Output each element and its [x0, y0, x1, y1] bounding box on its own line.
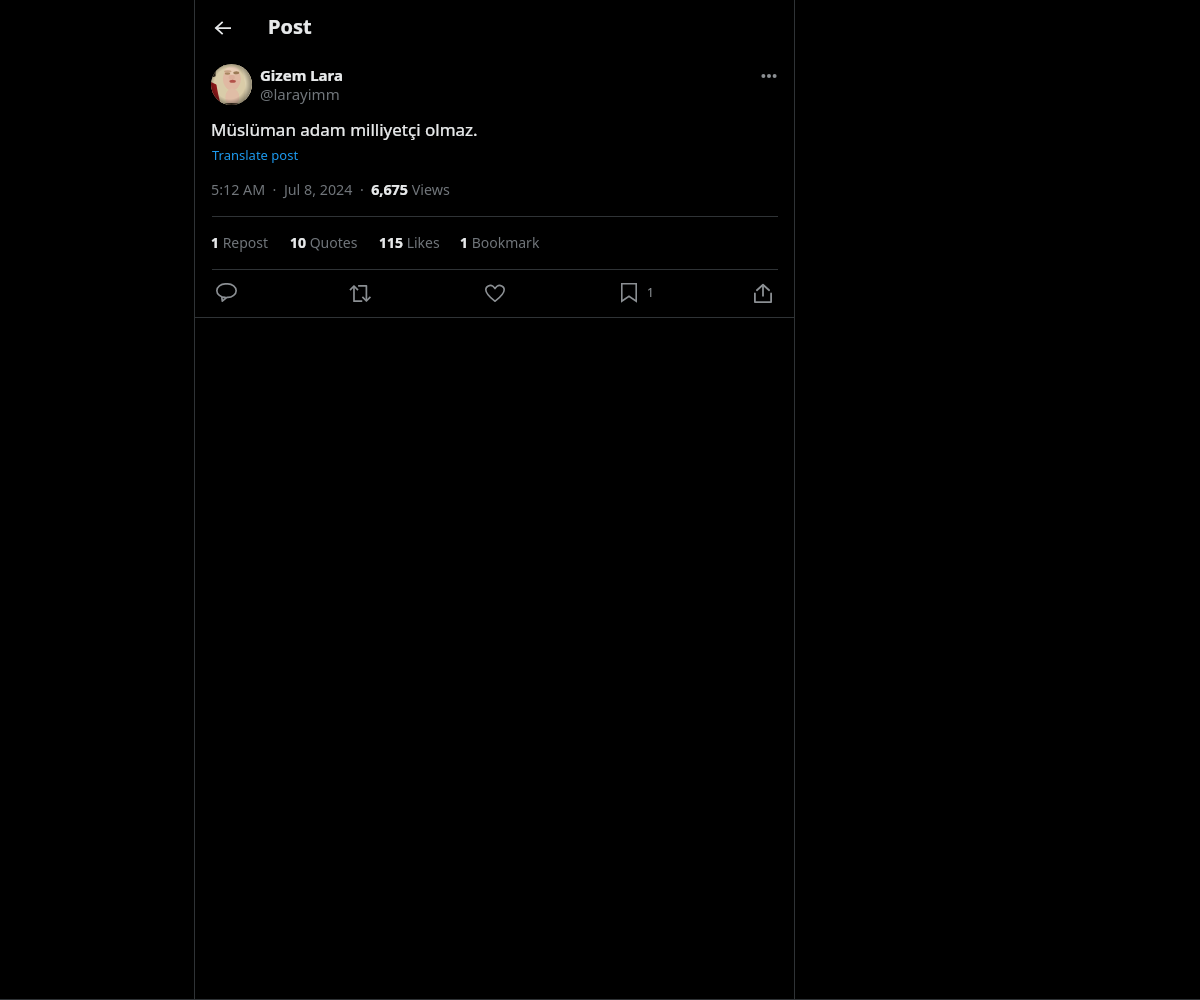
- button[interactable]: Profile picture of Gizem Lara: [211, 64, 252, 105]
- staticText: 5:12 AM · Jul 8, 2024 · 6,675 Views: [211, 180, 450, 199]
- button[interactable]: Translate post: [212, 146, 299, 164]
- button[interactable]: Share: [747, 278, 779, 308]
- staticText: Post: [268, 13, 312, 40]
- button[interactable]: Gizem Lara: [260, 65, 343, 85]
- staticText: Translate post: [212, 146, 299, 164]
- staticText: 1 Bookmark: [460, 233, 540, 252]
- button[interactable]: @larayimm: [260, 84, 340, 104]
- staticText: Gizem Lara: [260, 65, 343, 85]
- button[interactable]: 115 Likes: [379, 233, 440, 252]
- staticText: Müslüman adam milliyetçi olmaz.: [211, 118, 478, 141]
- staticText: 115 Likes: [379, 233, 440, 252]
- button[interactable]: Back: [204, 9, 241, 46]
- button[interactable]: Reply: [210, 277, 242, 307]
- button[interactable]: Repost: [343, 278, 375, 308]
- staticText: @larayimm: [260, 84, 340, 104]
- staticText: 10 Quotes: [290, 233, 358, 252]
- button[interactable]: Post: [268, 13, 312, 40]
- button[interactable]: 1 Repost: [211, 233, 269, 252]
- button[interactable]: More options: [753, 60, 784, 91]
- button[interactable]: Like: [479, 278, 511, 308]
- staticText: 1 Repost: [211, 233, 269, 252]
- button[interactable]: 10 Quotes: [290, 233, 358, 252]
- button[interactable]: 1 Bookmark: [460, 233, 540, 252]
- staticText: 1: [647, 284, 654, 300]
- button[interactable]: Bookmark, 1: [613, 277, 654, 307]
